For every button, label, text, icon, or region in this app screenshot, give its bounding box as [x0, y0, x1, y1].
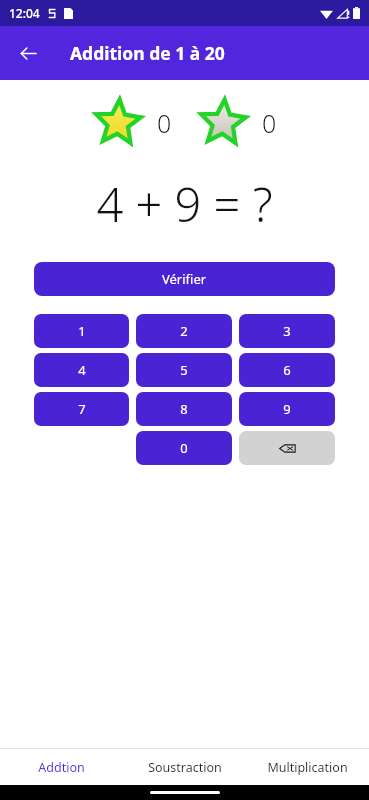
button[interactable]: Soustraction	[123, 749, 246, 785]
staticText: Addition de 1 à 20	[70, 41, 225, 65]
staticText: 9	[283, 400, 291, 418]
staticText: 2	[180, 322, 188, 340]
button[interactable]: Back	[8, 33, 48, 73]
staticText: 0	[262, 106, 277, 140]
staticText: Multiplication	[267, 759, 348, 776]
staticText: 5	[180, 361, 188, 379]
button[interactable]: 4	[34, 353, 129, 387]
staticText: 7	[78, 400, 86, 418]
staticText: 0	[157, 106, 172, 140]
button[interactable]: Multiplication	[246, 749, 369, 785]
staticText: 8	[180, 400, 188, 418]
button[interactable]: Addtion	[0, 749, 123, 785]
button[interactable]: 2	[136, 314, 232, 348]
button[interactable]: Backspace	[239, 431, 335, 465]
button[interactable]: 5	[136, 353, 232, 387]
staticText: 4 + 9 = ?	[96, 172, 273, 236]
staticText: Soustraction	[148, 759, 222, 776]
staticText: 4	[78, 361, 86, 379]
staticText: 3	[283, 322, 291, 340]
button[interactable]: 3	[239, 314, 335, 348]
staticText: Addtion	[38, 759, 85, 776]
button[interactable]: 8	[136, 392, 232, 426]
button[interactable]: 7	[34, 392, 129, 426]
staticText: 6	[283, 361, 291, 379]
staticText: 0	[180, 439, 188, 457]
button[interactable]: 6	[239, 353, 335, 387]
staticText: Vérifier	[162, 270, 207, 288]
button[interactable]: 9	[239, 392, 335, 426]
staticText: 12:04	[9, 5, 40, 21]
staticText: 1	[78, 322, 86, 340]
button[interactable]: 0	[136, 431, 232, 465]
button[interactable]: 1	[34, 314, 129, 348]
button[interactable]: Vérifier	[34, 262, 335, 296]
